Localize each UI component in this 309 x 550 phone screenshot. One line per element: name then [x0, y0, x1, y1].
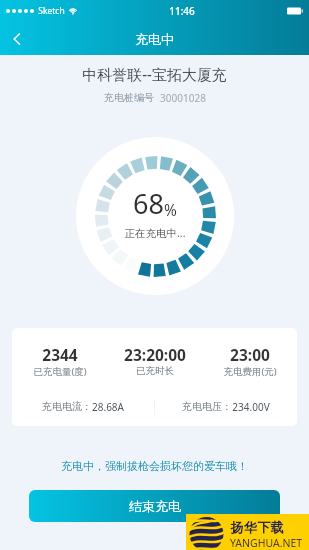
staticText: 234.00V [232, 400, 270, 414]
staticText: 充电电压： [182, 400, 232, 413]
staticText: 扬华下载 [230, 519, 284, 535]
staticText: 11:46 [169, 4, 195, 18]
staticText: 充电电流： [42, 400, 92, 413]
button[interactable]: Back [0, 22, 34, 55]
staticText: 充电桩编号 [104, 91, 154, 104]
button[interactable]: 结束充电 [29, 490, 280, 522]
staticText: 充电费用(元) [223, 365, 277, 378]
staticText: 68 [133, 185, 164, 222]
staticText: 结束充电 [129, 498, 181, 514]
staticText: 23:00 [230, 344, 270, 365]
staticText: YANGHUA.NET [230, 536, 303, 550]
staticText: 正在充电中... [76, 226, 234, 240]
staticText: 中科誉联--宝拓大厦充 [0, 64, 309, 84]
staticText: 30001028 [160, 91, 206, 105]
staticText: 2344 [42, 344, 78, 365]
staticText: 已充时长 [136, 365, 174, 377]
staticText: 28.68A [92, 400, 124, 414]
staticText: % [164, 199, 177, 220]
staticText: 充电中 [135, 31, 174, 47]
staticText: 23:20:00 [124, 344, 186, 365]
staticText: 已充电量(度) [33, 365, 87, 378]
staticText: 充电中，强制拔枪会损坏您的爱车哦！ [0, 459, 309, 473]
staticText: Sketch [38, 5, 65, 17]
